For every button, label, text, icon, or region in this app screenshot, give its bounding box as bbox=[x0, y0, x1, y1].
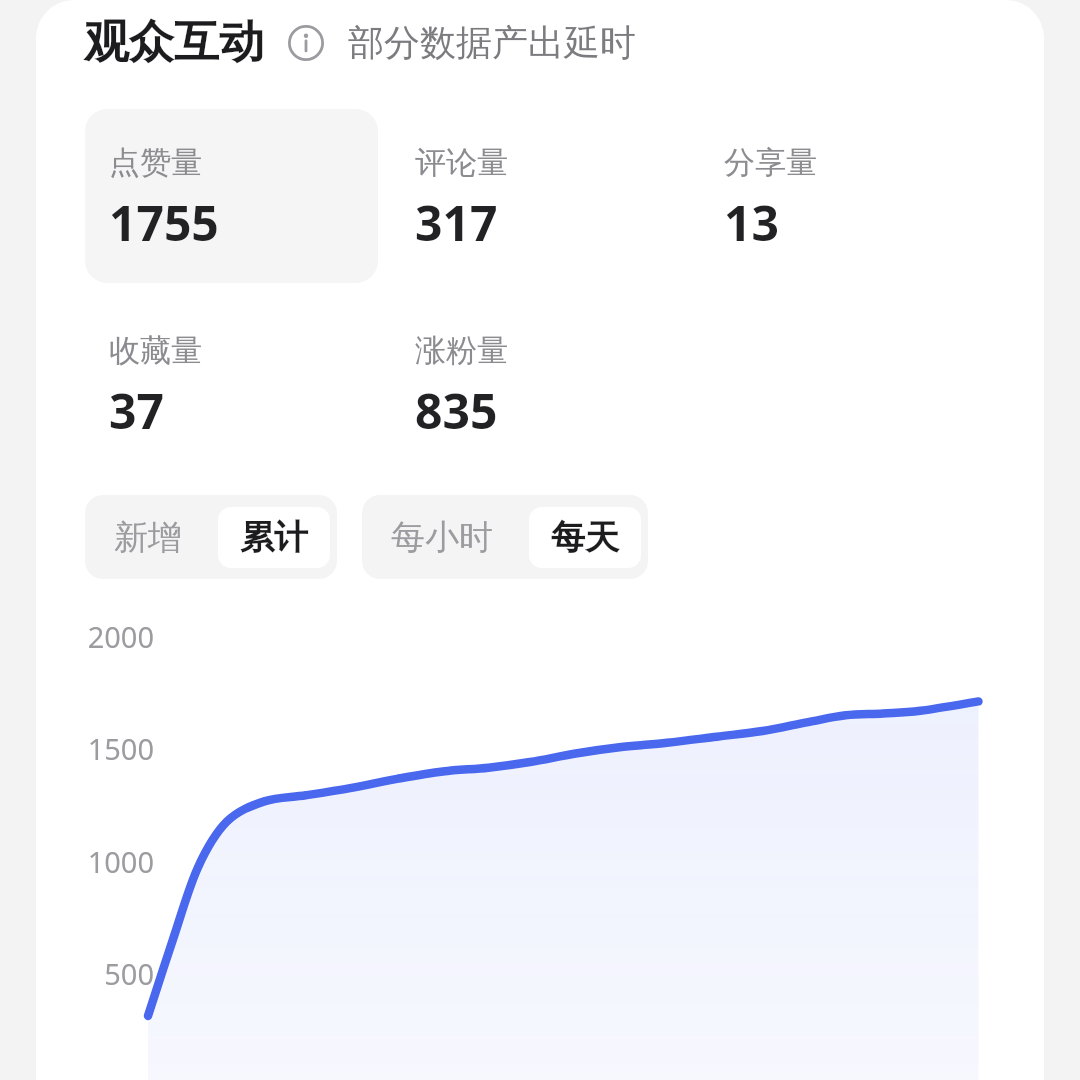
staticText: 每天 bbox=[551, 516, 619, 559]
staticText: 1500 bbox=[46, 729, 154, 768]
button[interactable]: 涨粉量 bbox=[391, 297, 700, 443]
button[interactable]: 累计 bbox=[218, 507, 330, 568]
button[interactable]: 新增 bbox=[92, 507, 204, 568]
button[interactable]: 分享量 bbox=[700, 109, 970, 255]
staticText: 新增 bbox=[114, 516, 182, 559]
staticText: 317 bbox=[415, 190, 498, 255]
staticText: 每小时 bbox=[391, 516, 493, 559]
button[interactable]: 点赞量 bbox=[85, 109, 391, 255]
staticText: 评论量 bbox=[415, 143, 508, 182]
button[interactable]: 收藏量 bbox=[85, 297, 391, 443]
staticText: 37 bbox=[109, 378, 164, 443]
staticText: 835 bbox=[415, 378, 498, 443]
staticText: 部分数据产出延时 bbox=[348, 20, 636, 65]
staticText: 点赞量 bbox=[109, 143, 202, 182]
button[interactable]: 每小时 bbox=[369, 507, 515, 568]
staticText: 13 bbox=[724, 190, 779, 255]
staticText: 分享量 bbox=[724, 143, 817, 182]
staticText: 1000 bbox=[46, 842, 154, 881]
button[interactable]: 每天 bbox=[529, 507, 641, 568]
staticText: 2000 bbox=[46, 617, 154, 656]
button[interactable] bbox=[85, 109, 378, 283]
button[interactable]: 数据说明 bbox=[286, 23, 326, 63]
staticText: 500 bbox=[46, 954, 154, 993]
staticText: 1755 bbox=[109, 190, 219, 255]
staticText: 累计 bbox=[240, 516, 308, 559]
staticText: 收藏量 bbox=[109, 331, 202, 370]
staticText: 观众互动 bbox=[84, 14, 264, 71]
button[interactable]: 评论量 bbox=[391, 109, 700, 255]
staticText: 涨粉量 bbox=[415, 331, 508, 370]
